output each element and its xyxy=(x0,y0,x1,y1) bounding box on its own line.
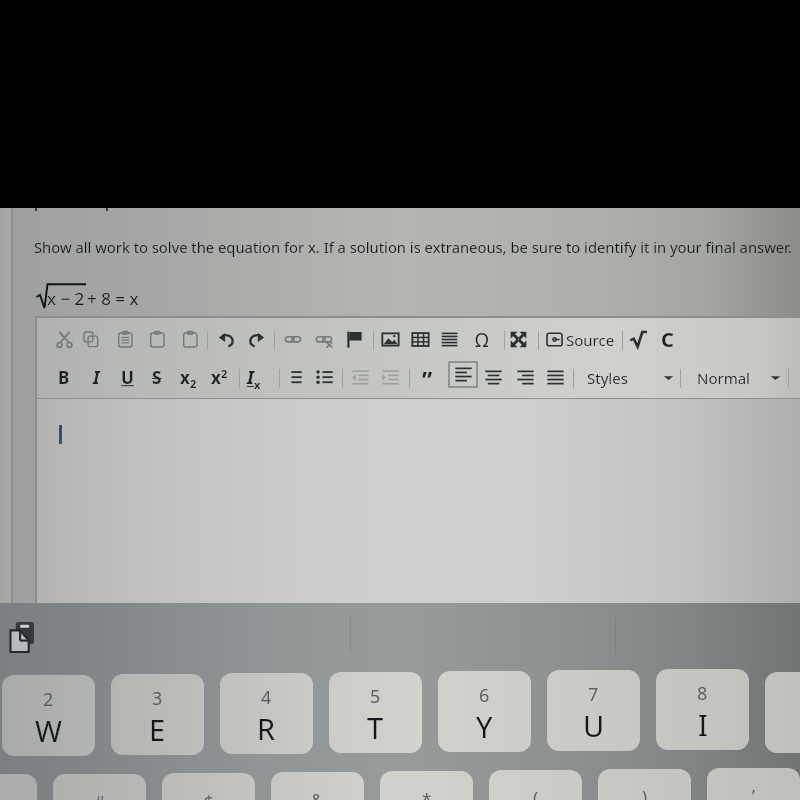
button[interactable]: T key xyxy=(329,672,422,753)
button[interactable]: Redo xyxy=(243,319,269,360)
staticText: Normal xyxy=(697,368,750,388)
staticText: & xyxy=(311,788,324,800)
button[interactable]: Copy xyxy=(78,319,104,360)
button[interactable]: O key xyxy=(765,672,800,753)
staticText: ( xyxy=(533,786,539,800)
button[interactable]: Source xyxy=(547,319,615,360)
button[interactable]: U xyxy=(116,357,138,398)
staticText: ” xyxy=(422,364,433,395)
button[interactable]: Superscript xyxy=(206,357,232,398)
button[interactable]: Remove format xyxy=(241,357,267,398)
staticText: B xyxy=(58,366,70,389)
button[interactable]: Styles dropdown xyxy=(655,357,681,398)
button[interactable]: Image xyxy=(377,319,403,360)
button[interactable]: Undo xyxy=(213,319,239,360)
staticText: 2 xyxy=(43,687,54,712)
button[interactable]: Justify xyxy=(542,357,568,398)
button[interactable]: E key xyxy=(111,674,204,755)
staticText: # xyxy=(94,790,105,800)
staticText: E xyxy=(149,710,166,749)
button[interactable]: Chemistry formula xyxy=(656,319,678,360)
staticText: 3 xyxy=(152,686,163,711)
staticText: 7 xyxy=(588,682,599,707)
staticText: I xyxy=(93,366,100,389)
staticText: x xyxy=(211,366,221,389)
button[interactable]: U key xyxy=(547,670,640,751)
button[interactable]: ( key xyxy=(489,770,582,800)
staticText: 2 xyxy=(190,376,197,391)
staticText: x xyxy=(180,366,190,389)
staticText: ’ xyxy=(752,784,755,800)
staticText: 5 xyxy=(370,684,381,709)
staticText: Styles xyxy=(587,368,628,388)
button[interactable]: Decrease indent xyxy=(347,357,373,398)
staticText: + 8 = x xyxy=(87,287,139,310)
staticText: Ω xyxy=(475,327,489,353)
staticText: R xyxy=(257,709,276,748)
staticText: 8 xyxy=(697,681,708,706)
button[interactable]: B xyxy=(53,357,75,398)
button[interactable]: S xyxy=(146,357,168,398)
button[interactable]: Numbered list xyxy=(280,357,306,398)
staticText: ) xyxy=(642,785,648,800)
staticText: x − 2 xyxy=(47,287,85,310)
button[interactable]: Paste as plain text xyxy=(144,319,170,360)
button[interactable]: ) key xyxy=(598,769,691,800)
staticText: W xyxy=(35,711,62,750)
staticText: C xyxy=(661,326,674,353)
button[interactable]: Subscript xyxy=(175,357,201,398)
button[interactable]: Paragraph format dropdown xyxy=(762,357,788,398)
staticText: 4 xyxy=(261,685,272,710)
button[interactable]: Styles xyxy=(587,357,662,398)
button[interactable]: Table xyxy=(407,319,433,360)
button[interactable]: * key xyxy=(380,771,473,800)
button[interactable]: Y key xyxy=(438,671,531,752)
button[interactable]: Math formula xyxy=(625,319,651,360)
button[interactable]: Screenshot xyxy=(10,622,34,652)
button[interactable]: Align left xyxy=(449,362,477,387)
button[interactable]: Special character xyxy=(471,319,493,360)
button[interactable]: Unlink xyxy=(311,319,337,360)
staticText: Y xyxy=(476,707,493,746)
staticText: Source xyxy=(566,330,615,350)
button[interactable]: W key xyxy=(2,675,95,756)
button[interactable]: Increase indent xyxy=(377,357,403,398)
button[interactable]: I key xyxy=(656,669,749,750)
staticText: x xyxy=(254,377,261,392)
button[interactable]: Align right xyxy=(512,357,538,398)
staticText: 2 xyxy=(221,366,228,381)
staticText: S xyxy=(152,366,162,389)
button[interactable]: ’ key xyxy=(707,768,800,800)
staticText: I xyxy=(698,705,708,744)
button[interactable]: Block quote xyxy=(416,357,438,398)
button[interactable]: Horizontal rule xyxy=(436,319,462,360)
staticText: 6 xyxy=(479,683,490,708)
staticText: * xyxy=(422,787,432,800)
button[interactable]: Align center xyxy=(480,357,506,398)
button[interactable]: Bulleted list xyxy=(311,357,337,398)
button[interactable]: R key xyxy=(220,673,313,754)
button[interactable]: Link xyxy=(280,319,306,360)
button[interactable]: $ key xyxy=(162,773,255,800)
staticText: I xyxy=(247,365,254,390)
staticText: $ xyxy=(204,789,214,800)
button[interactable]: Maximize xyxy=(505,319,531,360)
button[interactable]: & key xyxy=(271,772,364,800)
staticText: U xyxy=(583,706,605,745)
staticText: U xyxy=(121,366,134,389)
button[interactable]: # key xyxy=(53,774,146,800)
button[interactable]: Normal xyxy=(697,357,777,398)
button[interactable]: I xyxy=(85,357,107,398)
button[interactable]: Cut xyxy=(51,319,77,360)
staticText: Show all work to solve the equation for … xyxy=(34,237,792,257)
button[interactable]: Paste xyxy=(112,319,138,360)
button[interactable]: Anchor xyxy=(341,319,367,360)
button[interactable]: Paste from Word xyxy=(177,319,203,360)
staticText: T xyxy=(367,708,384,747)
